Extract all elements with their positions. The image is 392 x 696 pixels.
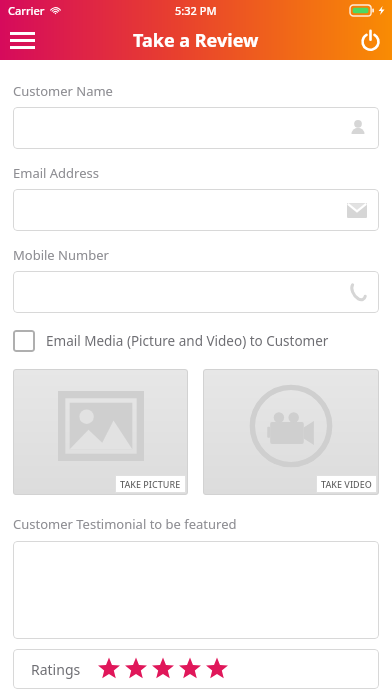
staticText: Ratings	[31, 660, 81, 679]
button[interactable]: Email Media (Picture and Video) to Custo…	[13, 330, 379, 352]
button[interactable]	[13, 271, 379, 313]
button[interactable]: Take Picture	[13, 369, 188, 495]
staticText: 5:32 PM	[175, 3, 217, 18]
button[interactable]	[13, 189, 379, 231]
staticText: Email Address	[13, 164, 99, 182]
staticText: Customer Name	[13, 82, 113, 100]
staticText: Take a Review	[133, 28, 259, 53]
button[interactable]: Ratings	[13, 649, 379, 689]
button[interactable]	[13, 107, 379, 149]
staticText: TAKE VIDEO	[321, 478, 372, 490]
staticText: TAKE PICTURE	[120, 478, 181, 490]
staticText: Mobile Number	[13, 246, 109, 264]
button[interactable]: Power / Logout	[348, 20, 392, 60]
staticText: Customer Testimonial to be featured	[13, 515, 237, 533]
button[interactable]	[13, 541, 379, 639]
button[interactable]: Menu	[0, 20, 44, 60]
staticText: Email Media (Picture and Video) to Custo…	[46, 332, 329, 350]
button[interactable]: Take Video	[203, 369, 379, 495]
staticText: Carrier	[8, 3, 45, 18]
